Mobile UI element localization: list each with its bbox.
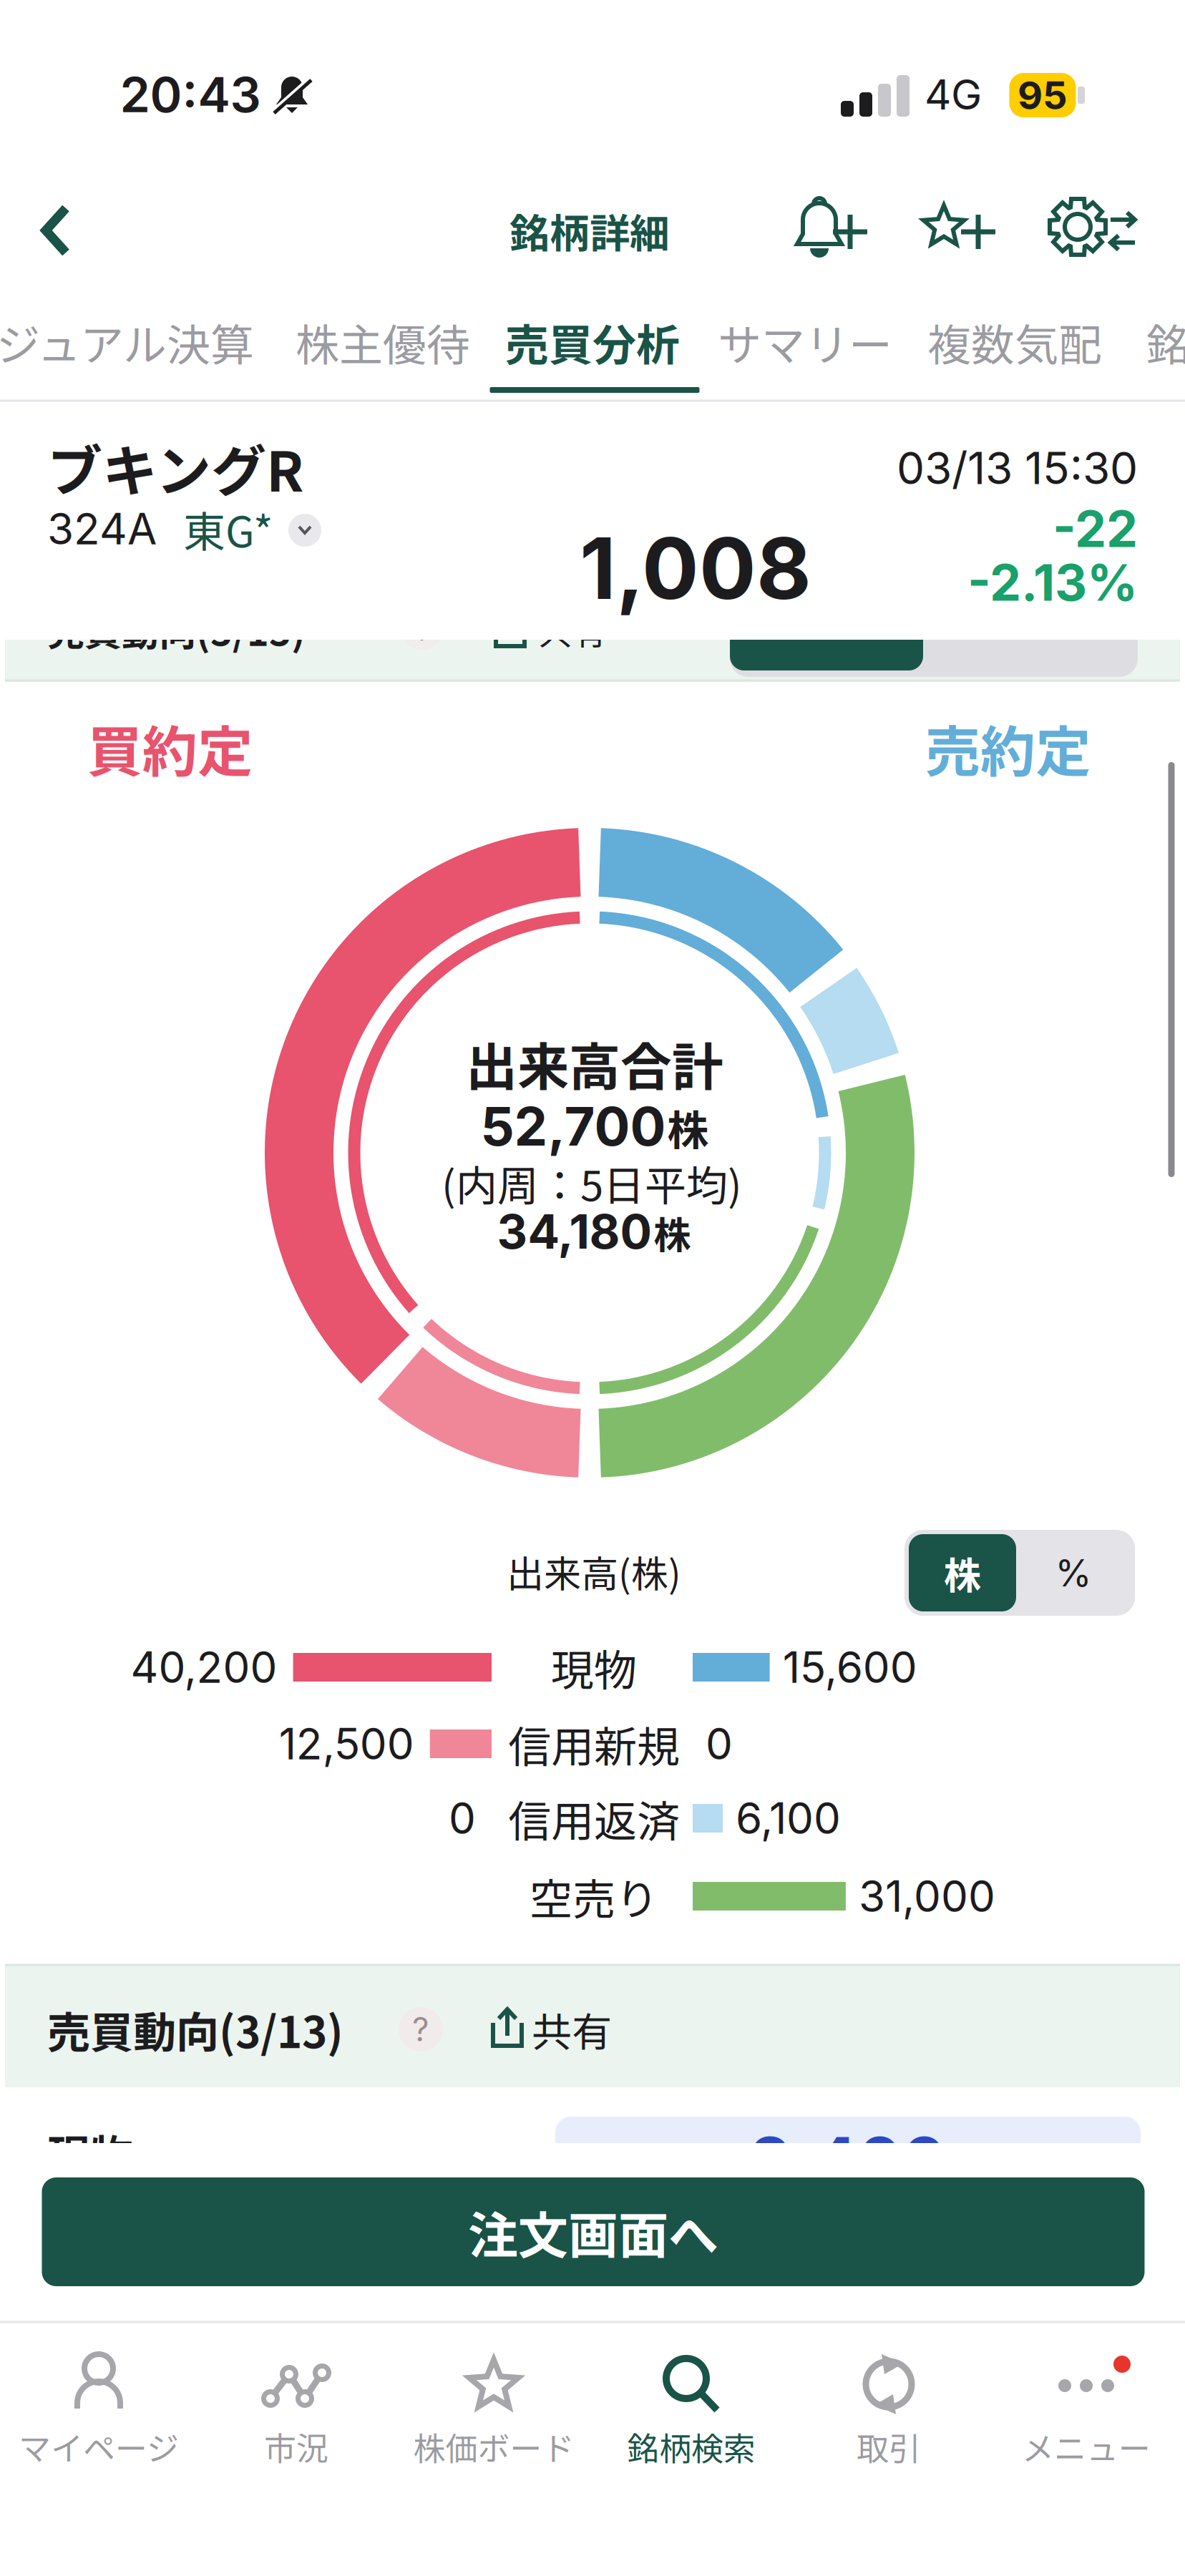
staticText: (内周：5日平均) xyxy=(442,1153,742,1213)
staticText: 東G* xyxy=(183,498,273,559)
staticText: 0 xyxy=(706,1718,733,1770)
staticText: % xyxy=(1055,1550,1092,1595)
staticText: ? xyxy=(412,2009,429,2049)
staticText: 現物 xyxy=(551,1636,637,1698)
staticText: 株 xyxy=(667,1097,709,1157)
staticText: サマリー xyxy=(718,310,892,374)
staticText: 株主優待 xyxy=(296,310,470,374)
staticText: 注文画面へ xyxy=(468,2196,718,2268)
staticText: 03/13 15:30 xyxy=(897,441,1138,495)
button[interactable]: Help xyxy=(399,2007,443,2051)
staticText: 売買分析 xyxy=(505,310,680,374)
staticText: 52,700 xyxy=(481,1094,666,1158)
staticText: 出来高合計 xyxy=(466,1026,723,1101)
button[interactable]: 銘柄検索 xyxy=(592,2321,790,2492)
staticText: 34,180 xyxy=(497,1203,652,1260)
staticText: 売買動向(3/13) xyxy=(47,603,306,657)
staticText: 4G xyxy=(925,69,982,120)
staticText: メニュー xyxy=(1022,2423,1151,2470)
staticText: 市況 xyxy=(264,2423,328,2470)
staticText: ブキングR xyxy=(47,427,304,507)
staticText: 2,400 xyxy=(750,2121,946,2201)
staticText: 銘 xyxy=(1146,310,1185,374)
staticText: 出来高(株) xyxy=(507,1544,681,1598)
staticText: 95 xyxy=(1018,72,1068,118)
staticText: 12,500 xyxy=(279,1718,414,1770)
staticText: 40,200 xyxy=(131,1641,277,1693)
staticText: 6,100 xyxy=(736,1792,841,1844)
staticText: 売約定 xyxy=(925,708,1091,788)
button[interactable]: 市況 xyxy=(197,2321,395,2492)
staticText: 20:43 xyxy=(120,65,261,124)
button[interactable]: 株 xyxy=(909,1534,1016,1611)
staticText: 買約定 xyxy=(87,708,253,788)
staticText: 銘柄詳細 xyxy=(509,201,670,259)
button[interactable]: マイページ xyxy=(0,2321,197,2492)
button[interactable]: 注文画面へ xyxy=(42,2177,1145,2286)
staticText: -2.13% xyxy=(967,552,1138,613)
staticText: 信用新規 xyxy=(508,1713,680,1775)
button[interactable]: Settings xyxy=(1046,187,1139,273)
staticText: 株 xyxy=(654,1205,691,1259)
staticText: -22 xyxy=(1053,499,1138,559)
staticText: ? xyxy=(414,612,430,648)
staticText: マイページ xyxy=(19,2423,179,2470)
staticText: 共有 xyxy=(532,2000,612,2058)
staticText: 15,600 xyxy=(783,1641,917,1693)
button[interactable]: % xyxy=(1016,1534,1131,1611)
staticText: 1,008 xyxy=(580,517,811,619)
staticText: 空売り xyxy=(530,1865,658,1927)
staticText: 株 xyxy=(944,1546,981,1600)
button[interactable]: Add price alert xyxy=(789,187,882,273)
button[interactable]: 株価ボード xyxy=(395,2321,592,2492)
button[interactable]: Back xyxy=(16,191,95,270)
staticText: ジュアル決算 xyxy=(0,310,254,374)
staticText: 複数気配 xyxy=(927,310,1102,374)
button[interactable]: 共有 xyxy=(487,2000,612,2058)
button[interactable]: Add to watchlist xyxy=(916,187,1009,273)
staticText: 銘柄検索 xyxy=(627,2423,756,2470)
staticText: 0 xyxy=(449,1792,476,1844)
staticText: 売買動向(3/13) xyxy=(47,1998,343,2060)
staticText: 取引 xyxy=(857,2423,921,2470)
staticText: 31,000 xyxy=(859,1870,995,1922)
staticText: 共有 xyxy=(538,605,607,655)
button[interactable]: メニュー xyxy=(987,2321,1185,2492)
staticText: 株価ボード xyxy=(413,2423,574,2470)
button[interactable]: 取引 xyxy=(790,2321,987,2492)
staticText: 信用返済 xyxy=(508,1787,680,1849)
staticText: 現物 xyxy=(47,2121,133,2184)
staticText: 324A xyxy=(47,503,157,555)
